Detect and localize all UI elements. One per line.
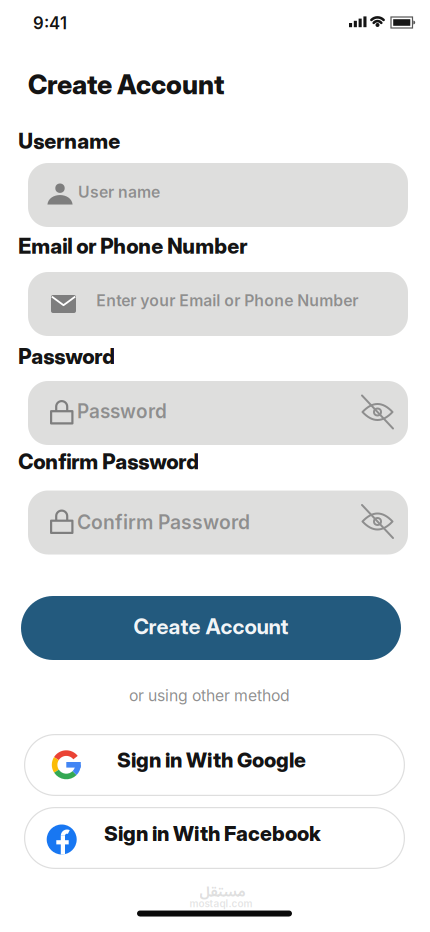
staticText: Enter your Email or Phone Number [96,291,358,310]
button[interactable]: Sign in With Google [24,734,405,796]
staticText: Password [77,400,167,423]
staticText: Sign in With Google [117,747,306,772]
staticText: User name [78,182,160,201]
button[interactable]: Sign in With Facebook [24,807,405,869]
staticText: mostaql.com [189,897,252,910]
button[interactable]: Create Account [21,596,401,660]
staticText: Confirm Password [77,510,250,534]
staticText: Create Account [28,68,224,101]
staticText: مستقل [199,877,245,907]
staticText: Confirm Password [18,449,199,474]
staticText: or using other method [129,686,290,705]
staticText: Password [18,344,115,369]
staticText: 9:41 [33,13,67,33]
staticText: Username [18,128,120,154]
button[interactable]: Show password [358,395,396,429]
staticText: Email or Phone Number [18,233,247,259]
button[interactable]: Show password [358,504,396,538]
staticText: Sign in With Facebook [104,821,321,846]
staticText: Create Account [133,614,288,639]
